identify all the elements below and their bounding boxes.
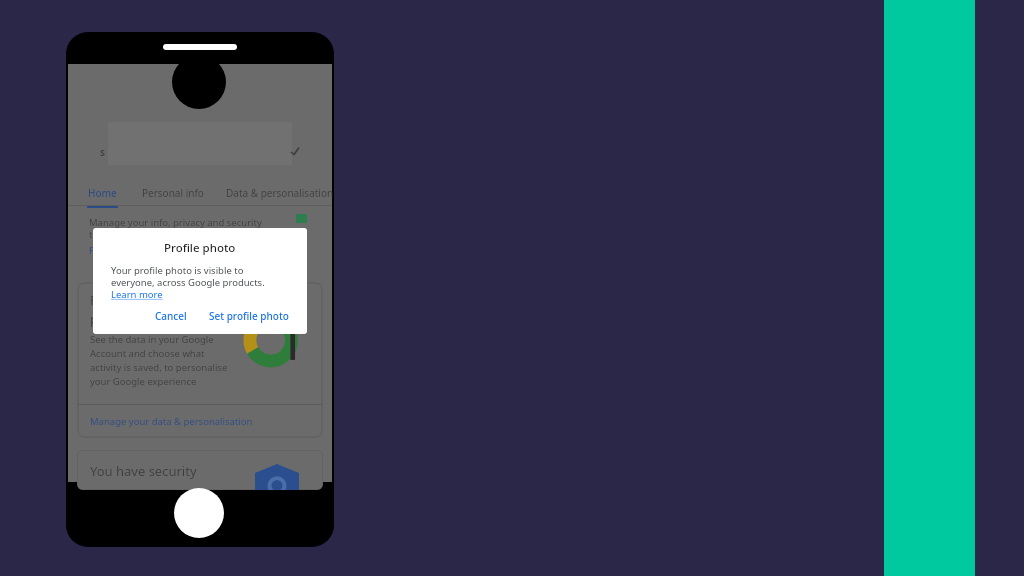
button[interactable]: Data & personalisation [226, 186, 334, 205]
button[interactable]: Set profile photo [201, 304, 297, 328]
staticText: Set profile photo [209, 309, 289, 323]
button[interactable]: You have security [77, 450, 323, 490]
staticText: Profile photo [164, 240, 236, 256]
staticText: Your profile photo is visible to [111, 264, 244, 277]
button[interactable]: Profile photo [172, 55, 226, 109]
button[interactable]: Home [87, 186, 118, 208]
button[interactable]: Learn more [111, 288, 163, 301]
button[interactable]: Privacy & [77, 282, 323, 438]
staticText: everyone, across Google products. [111, 276, 265, 289]
staticText: Home [88, 186, 117, 200]
staticText: Manage your info, privacy and security [89, 216, 262, 229]
button[interactable]: Cancel [147, 304, 195, 328]
staticText: to make Google work better for you [89, 228, 249, 241]
staticText: your Google experience [90, 375, 197, 388]
staticText: activity is saved, to personalise [90, 361, 228, 374]
button[interactable]: Manage your data & personalisation [90, 415, 253, 428]
staticText: Personal info [142, 186, 204, 200]
staticText: Cancel [155, 309, 187, 323]
button[interactable]: Home [174, 488, 224, 538]
button[interactable]: Find quick actions [89, 244, 169, 257]
staticText: Account and choose what [90, 347, 205, 360]
staticText: personalisation [90, 310, 185, 328]
staticText: See the data in your Google [90, 333, 214, 346]
button[interactable]: Personal info [142, 186, 204, 205]
staticText: Privacy & [90, 291, 147, 309]
staticText: You have security [90, 462, 197, 480]
staticText: Data & personalisation [226, 186, 334, 200]
staticText: S [100, 146, 105, 158]
